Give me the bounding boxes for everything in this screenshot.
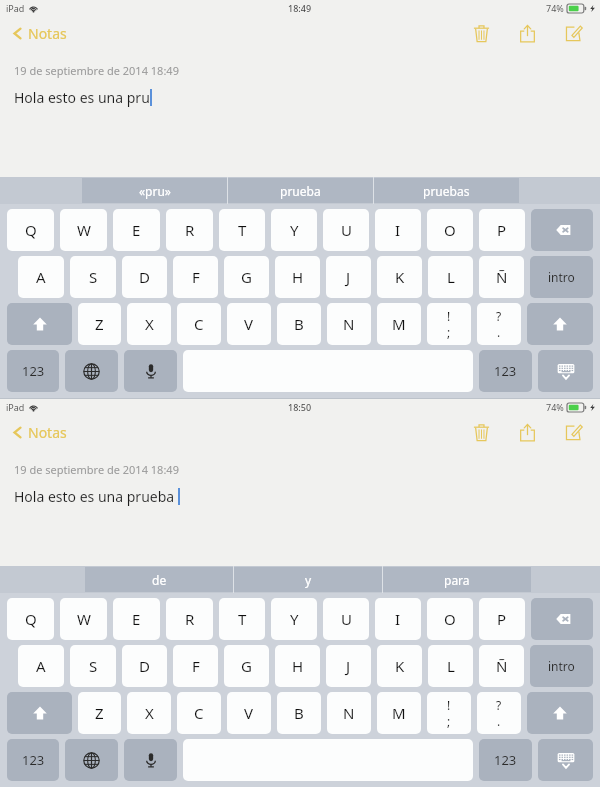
button[interactable]: Notas — [8, 419, 69, 446]
button[interactable]: Shift — [527, 303, 593, 345]
button[interactable]: J — [326, 645, 371, 687]
button[interactable]: 123 — [479, 739, 532, 781]
button[interactable]: 123 — [7, 350, 59, 392]
button[interactable]: S — [70, 256, 116, 298]
button[interactable]: Backspace — [531, 209, 593, 251]
button[interactable]: O — [427, 209, 473, 251]
button[interactable]: W — [60, 209, 107, 251]
button[interactable]: I — [375, 598, 421, 640]
button[interactable]: U — [323, 209, 369, 251]
button[interactable]: F — [173, 645, 218, 687]
button[interactable]: P — [479, 209, 525, 251]
button[interactable]: 123 — [479, 350, 532, 392]
button[interactable]: Change language — [65, 739, 118, 781]
button[interactable]: ! — [427, 303, 471, 345]
button[interactable]: K — [377, 256, 422, 298]
button[interactable]: Ñ — [479, 256, 524, 298]
button[interactable]: L — [428, 645, 473, 687]
button[interactable]: D — [122, 645, 167, 687]
button[interactable]: Y — [271, 209, 317, 251]
button[interactable]: Z — [78, 692, 121, 734]
button[interactable]: V — [227, 692, 271, 734]
button[interactable]: Share — [512, 18, 542, 48]
button[interactable]: y — [234, 567, 382, 592]
button[interactable]: X — [127, 303, 171, 345]
button[interactable]: A — [18, 645, 64, 687]
button[interactable]: M — [377, 692, 421, 734]
button[interactable]: H — [275, 256, 320, 298]
button[interactable]: M — [377, 303, 421, 345]
button[interactable]: W — [60, 598, 107, 640]
button[interactable]: T — [219, 598, 265, 640]
button[interactable]: Ñ — [479, 645, 524, 687]
staticText: S — [89, 656, 98, 676]
button[interactable]: T — [219, 209, 265, 251]
button[interactable]: P — [479, 598, 525, 640]
button[interactable]: pruebas — [374, 178, 519, 203]
button[interactable]: Hide keyboard — [538, 739, 593, 781]
button[interactable]: U — [323, 598, 369, 640]
button[interactable]: S — [70, 645, 116, 687]
button[interactable]: prueba — [228, 178, 373, 203]
button[interactable]: Y — [271, 598, 317, 640]
button[interactable]: I — [375, 209, 421, 251]
button[interactable]: Q — [7, 598, 54, 640]
button[interactable]: ? — [477, 303, 521, 345]
button[interactable]: V — [227, 303, 271, 345]
button[interactable]: B — [277, 303, 321, 345]
staticText: S — [89, 267, 98, 287]
button[interactable]: C — [177, 303, 221, 345]
button[interactable]: New note — [558, 417, 588, 447]
button[interactable]: Hide keyboard — [538, 350, 593, 392]
button[interactable]: D — [122, 256, 167, 298]
button[interactable]: E — [113, 209, 160, 251]
staticText: K — [395, 656, 405, 676]
staticText: 18:49 — [288, 2, 312, 14]
staticText: O — [444, 220, 456, 240]
button[interactable]: L — [428, 256, 473, 298]
button[interactable]: Shift — [7, 692, 72, 734]
button[interactable]: O — [427, 598, 473, 640]
button[interactable]: J — [326, 256, 371, 298]
button[interactable]: Change language — [65, 350, 118, 392]
button[interactable]: Shift — [7, 303, 72, 345]
button[interactable]: Shift — [527, 692, 593, 734]
button[interactable]: Notas — [8, 20, 69, 47]
button[interactable]: E — [113, 598, 160, 640]
button[interactable]: N — [327, 303, 371, 345]
button[interactable]: N — [327, 692, 371, 734]
button[interactable]: F — [173, 256, 218, 298]
button[interactable]: de — [85, 567, 233, 592]
button[interactable]: para — [383, 567, 531, 592]
button[interactable]: Backspace — [531, 598, 593, 640]
button[interactable]: G — [224, 256, 269, 298]
button[interactable]: Dictation — [124, 350, 177, 392]
button[interactable]: Z — [78, 303, 121, 345]
button[interactable]: intro — [530, 256, 593, 298]
button[interactable]: K — [377, 645, 422, 687]
button[interactable]: 123 — [7, 739, 59, 781]
button[interactable]: New note — [558, 18, 588, 48]
button[interactable]: G — [224, 645, 269, 687]
button[interactable]: ! — [427, 692, 471, 734]
button[interactable]: intro — [530, 645, 593, 687]
button[interactable]: Delete note — [466, 417, 496, 447]
button[interactable]: Dictation — [124, 739, 177, 781]
button[interactable]: A — [18, 256, 64, 298]
button[interactable]: «pru» — [82, 178, 227, 203]
button[interactable]: C — [177, 692, 221, 734]
staticText: N — [343, 703, 355, 723]
button[interactable]: Delete note — [466, 18, 496, 48]
button[interactable]: ? — [477, 692, 521, 734]
staticText: C — [194, 314, 204, 334]
button[interactable]: B — [277, 692, 321, 734]
button[interactable]: Share — [512, 417, 542, 447]
button[interactable]: X — [127, 692, 171, 734]
button[interactable]: H — [275, 645, 320, 687]
staticText: L — [447, 656, 455, 676]
button[interactable]: R — [166, 209, 213, 251]
button[interactable]: R — [166, 598, 213, 640]
button[interactable]: Q — [7, 209, 54, 251]
